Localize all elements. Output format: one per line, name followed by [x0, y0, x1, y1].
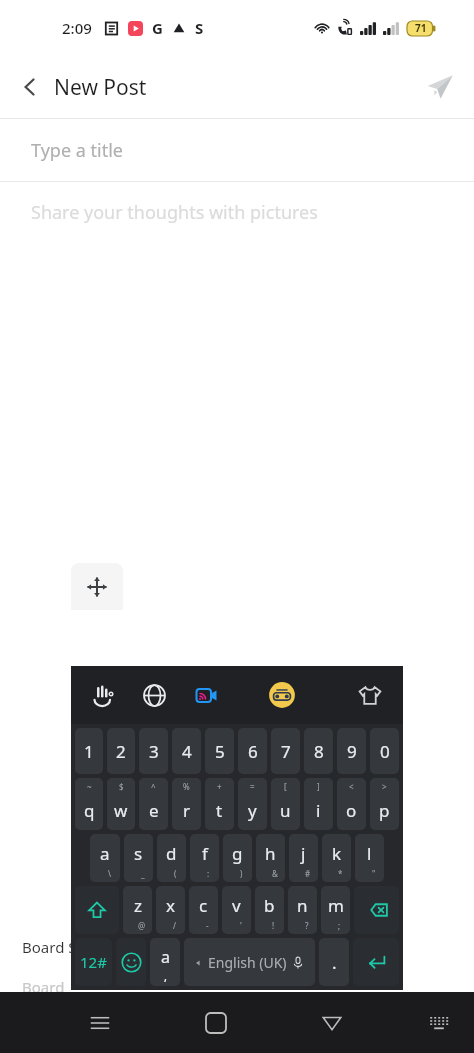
staticText: d	[166, 842, 177, 865]
button[interactable]: English (UK)	[184, 938, 315, 986]
staticText: +	[217, 781, 222, 792]
button[interactable]: 9	[337, 728, 366, 774]
staticText: 5	[215, 740, 225, 763]
button[interactable]: Type a title	[0, 119, 474, 181]
button[interactable]: f	[190, 834, 219, 882]
staticText: p	[379, 799, 390, 822]
staticText: l	[367, 842, 372, 865]
button[interactable]: 7	[271, 728, 300, 774]
staticText: *	[338, 868, 343, 879]
staticText: 1	[84, 740, 94, 763]
staticText: r	[183, 799, 191, 822]
button[interactable]: %	[172, 778, 201, 830]
staticText: t	[216, 799, 223, 822]
button[interactable]: ~	[75, 778, 103, 830]
button[interactable]: m	[321, 886, 350, 934]
staticText: i	[316, 799, 321, 822]
button[interactable]: <	[337, 778, 366, 830]
staticText: $	[119, 781, 124, 792]
staticText: Board	[22, 977, 65, 997]
button[interactable]: Recents	[77, 1000, 123, 1046]
staticText: ]	[317, 781, 320, 792]
staticText: u	[280, 799, 291, 822]
button[interactable]: Shift	[75, 886, 119, 934]
staticText: 0	[380, 740, 390, 763]
button[interactable]: l	[355, 834, 384, 882]
button[interactable]: 12#	[75, 938, 112, 986]
staticText: /	[173, 920, 176, 931]
staticText: !	[272, 920, 275, 931]
staticText: "	[372, 868, 376, 879]
button[interactable]: j	[289, 834, 318, 882]
button[interactable]: d	[157, 834, 186, 882]
button[interactable]: ^	[139, 778, 168, 830]
staticText: w	[114, 799, 128, 822]
staticText: q	[84, 799, 95, 822]
staticText: ?	[305, 920, 309, 931]
button[interactable]: Home	[193, 1000, 239, 1046]
button[interactable]: .	[319, 938, 349, 986]
staticText: s	[134, 842, 143, 865]
button[interactable]: 6	[238, 728, 267, 774]
button[interactable]: Share your thoughts with pictures	[0, 182, 474, 242]
button[interactable]: 0	[370, 728, 399, 774]
button[interactable]: Handwriting	[83, 676, 121, 714]
button[interactable]: ]	[304, 778, 333, 830]
button[interactable]: +	[205, 778, 234, 830]
staticText: m	[328, 894, 344, 917]
button[interactable]: Send	[416, 63, 464, 111]
staticText: \	[108, 868, 111, 879]
button[interactable]: Board	[0, 967, 474, 1007]
staticText: 12#	[80, 952, 107, 972]
staticText: h	[265, 842, 276, 865]
button[interactable]: Board S	[0, 926, 474, 967]
button[interactable]: Language	[135, 676, 173, 714]
staticText: )	[240, 868, 243, 879]
button[interactable]: >	[370, 778, 399, 830]
button[interactable]: Emoji	[116, 938, 146, 986]
button[interactable]: Language switch	[150, 938, 180, 986]
button[interactable]: Enter	[353, 938, 399, 986]
button[interactable]: b	[255, 886, 284, 934]
button[interactable]: g	[223, 834, 252, 882]
button[interactable]: $	[107, 778, 135, 830]
staticText: e	[149, 799, 159, 822]
button[interactable]: Video	[187, 676, 225, 714]
staticText: :	[207, 868, 210, 879]
button[interactable]: Games	[263, 676, 301, 714]
button[interactable]: v	[222, 886, 251, 934]
button[interactable]: 3	[139, 728, 168, 774]
staticText: _	[141, 868, 145, 879]
staticText: =	[250, 781, 255, 792]
button[interactable]: c	[189, 886, 218, 934]
button[interactable]: =	[238, 778, 267, 830]
button[interactable]: h	[256, 834, 285, 882]
staticText: @	[138, 920, 146, 931]
button[interactable]: [	[271, 778, 300, 830]
button[interactable]: 1	[75, 728, 103, 774]
button[interactable]: Hide keyboard	[418, 1002, 460, 1044]
button[interactable]: 4	[172, 728, 201, 774]
staticText: o	[346, 799, 357, 822]
button[interactable]: 5	[205, 728, 234, 774]
button[interactable]: 8	[304, 728, 333, 774]
staticText: z	[134, 894, 142, 917]
button[interactable]: x	[156, 886, 185, 934]
staticText: %	[183, 781, 190, 792]
staticText: New Post	[54, 73, 147, 102]
button[interactable]: s	[124, 834, 153, 882]
staticText: >	[382, 781, 387, 792]
button[interactable]: n	[288, 886, 317, 934]
button[interactable]: Move keyboard	[71, 563, 123, 610]
button[interactable]: Back	[8, 65, 52, 109]
button[interactable]: z	[123, 886, 152, 934]
staticText: v	[232, 894, 241, 917]
button[interactable]: 2	[107, 728, 135, 774]
staticText: ;	[338, 920, 341, 931]
button[interactable]: Back	[309, 1000, 355, 1046]
button[interactable]: k	[322, 834, 351, 882]
button[interactable]: Theme	[351, 676, 389, 714]
button[interactable]: Backspace	[354, 886, 399, 934]
button[interactable]: a	[90, 834, 120, 882]
staticText: #	[305, 868, 311, 879]
